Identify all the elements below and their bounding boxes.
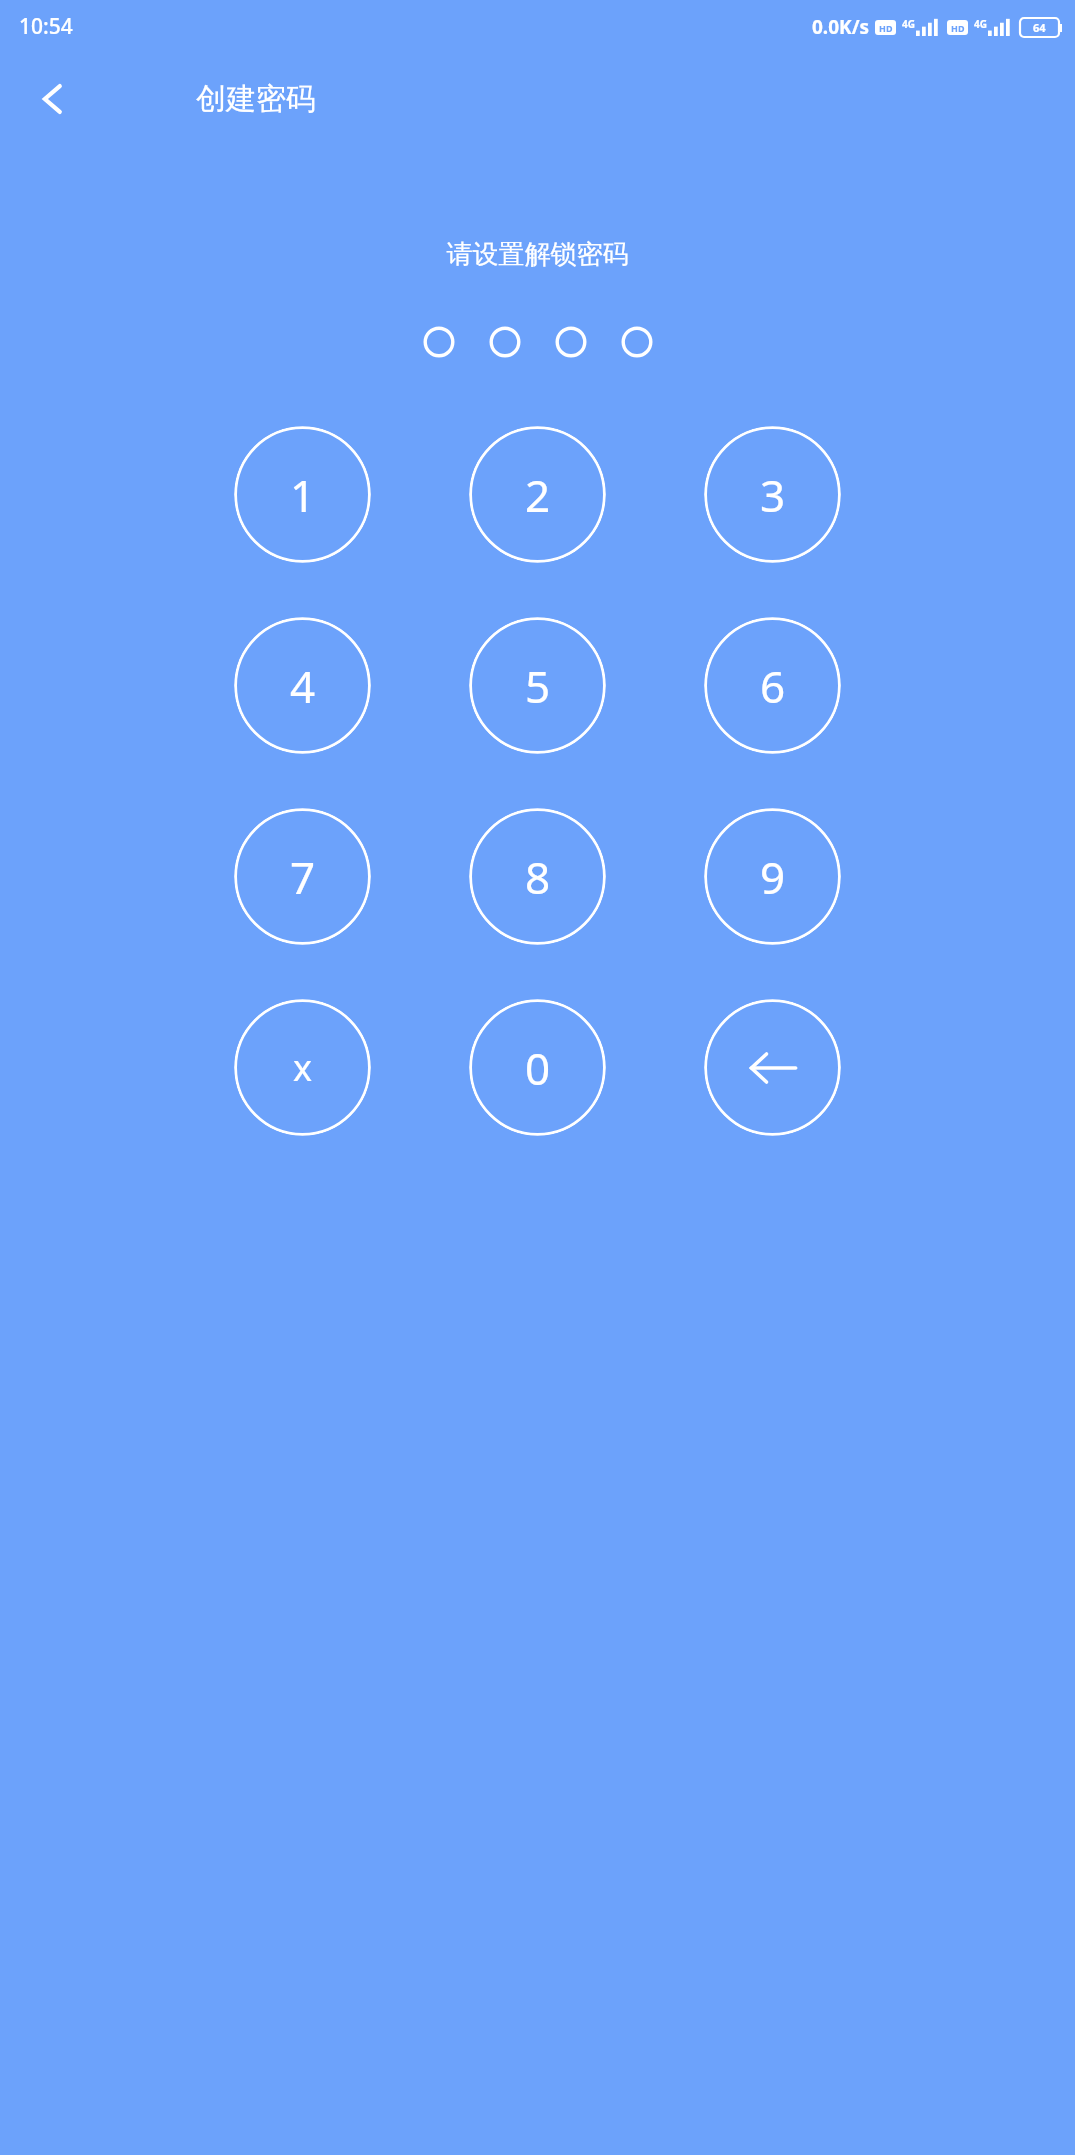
staticText: 6 xyxy=(760,656,786,716)
staticText: 请设置解锁密码 xyxy=(0,238,1075,271)
staticText: 1 xyxy=(290,465,316,525)
staticText: 10:54 xyxy=(19,12,73,41)
staticText: 9 xyxy=(760,847,786,907)
button[interactable]: x xyxy=(234,999,371,1136)
button[interactable]: 0 xyxy=(469,999,606,1136)
staticText: 64 xyxy=(1033,20,1046,35)
staticText: HD xyxy=(879,22,893,34)
button[interactable]: 2 xyxy=(469,426,606,563)
button[interactable]: 4 xyxy=(234,617,371,754)
button[interactable]: 6 xyxy=(704,617,841,754)
staticText: 5 xyxy=(525,656,551,716)
staticText: 8 xyxy=(525,847,551,907)
staticText: 0.0K/s xyxy=(812,14,870,40)
staticText: 7 xyxy=(290,847,316,907)
button[interactable]: 1 xyxy=(234,426,371,563)
button[interactable]: 3 xyxy=(704,426,841,563)
staticText: x xyxy=(293,1043,313,1092)
button[interactable]: 5 xyxy=(469,617,606,754)
staticText: 创建密码 xyxy=(196,80,316,118)
button[interactable]: 9 xyxy=(704,808,841,945)
staticText: HD xyxy=(951,22,965,34)
staticText: 2 xyxy=(525,465,551,525)
button[interactable]: Delete xyxy=(704,999,841,1136)
button[interactable]: Back xyxy=(22,68,84,130)
staticText: 3 xyxy=(760,465,786,525)
staticText: 4G xyxy=(902,17,915,31)
staticText: 4 xyxy=(290,656,316,716)
button[interactable]: 8 xyxy=(469,808,606,945)
staticText: 0 xyxy=(525,1038,551,1098)
button[interactable]: 7 xyxy=(234,808,371,945)
staticText: 4G xyxy=(974,17,987,31)
